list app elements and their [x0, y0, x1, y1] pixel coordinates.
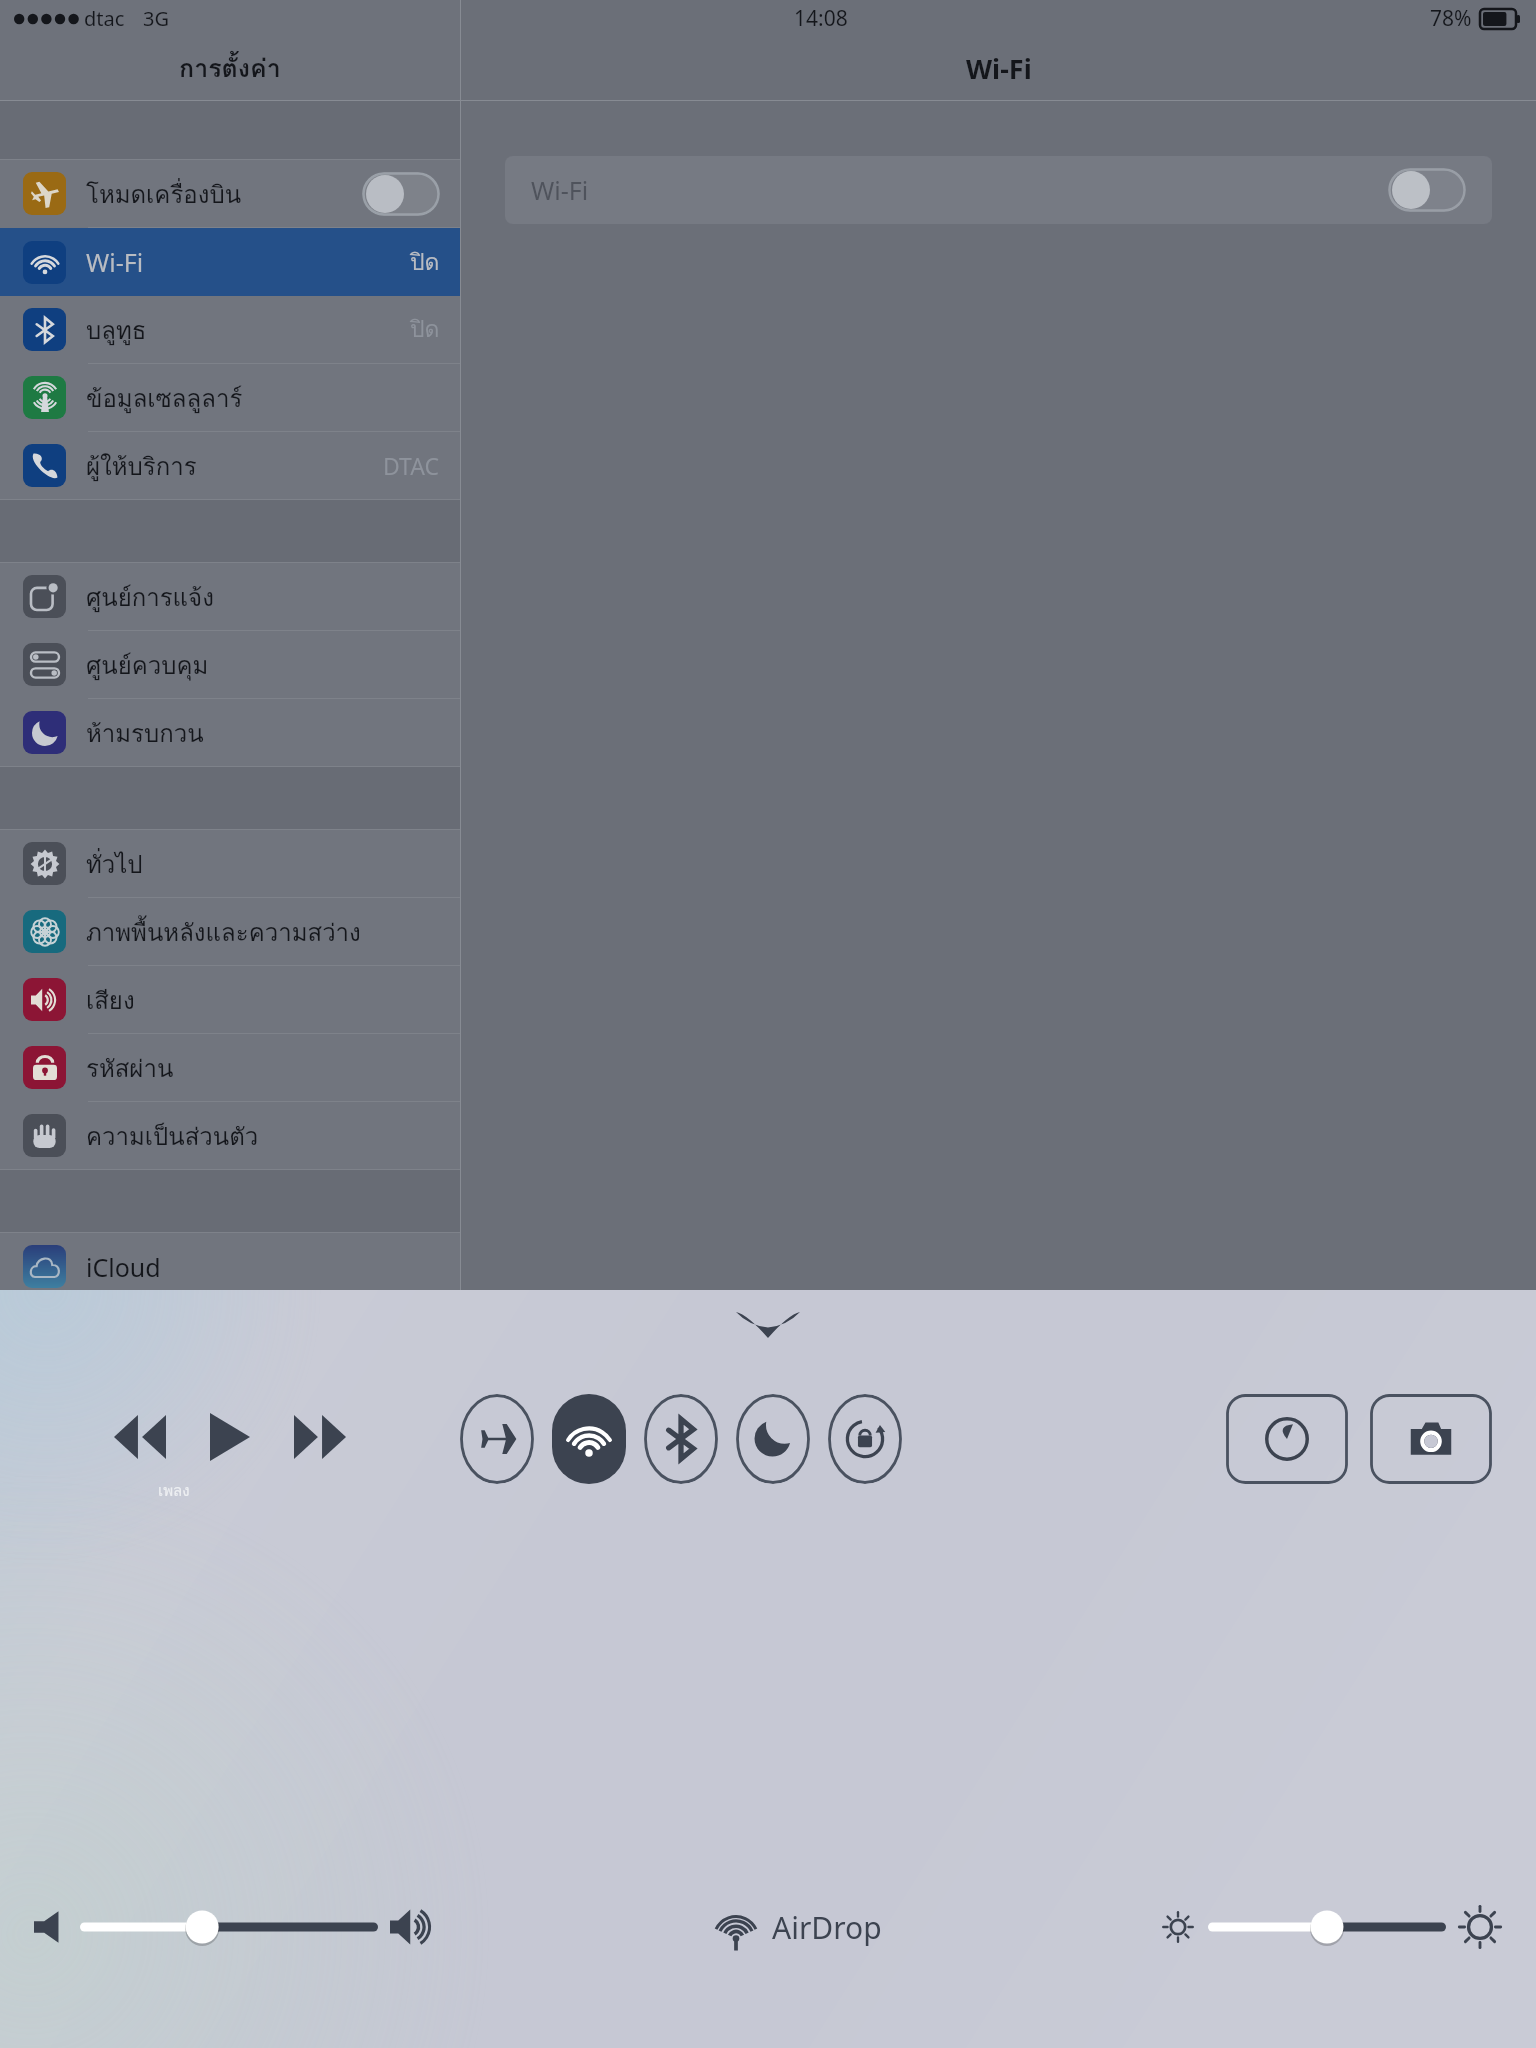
button[interactable]: Do not disturb	[736, 1394, 810, 1484]
button[interactable]: Play	[188, 1395, 272, 1479]
staticText: ทั่วไป	[86, 845, 440, 883]
staticText: รหัสผ่าน	[86, 1049, 440, 1087]
staticText: ศูนย์การแจ้ง	[86, 578, 440, 616]
staticText: เสียง	[86, 981, 440, 1019]
button[interactable]: Wi-Fi	[552, 1394, 626, 1484]
button[interactable]: Camera	[1370, 1394, 1492, 1484]
staticText: Wi-Fi	[86, 245, 410, 279]
staticText: AirDrop	[772, 1907, 882, 1948]
staticText: ศูนย์ควบคุม	[86, 646, 440, 684]
staticText: บลูทูธ	[86, 311, 410, 349]
staticText: การตั้งค่า	[179, 48, 281, 88]
button[interactable]: Airplane mode toggle	[362, 172, 440, 216]
staticText: 3G	[143, 5, 169, 32]
staticText: iCloud	[86, 1250, 440, 1284]
button[interactable]: ทั่วไป	[0, 830, 460, 898]
staticText: เพลง	[158, 1479, 190, 1503]
button[interactable]: Wi-Fi	[505, 156, 1492, 224]
staticText: Mail, รายชื่อ, ปฏิทิน	[86, 1316, 440, 1354]
button[interactable]: AirDrop	[704, 1893, 892, 1961]
staticText: 78%	[1430, 4, 1472, 33]
button[interactable]: Previous track	[98, 1395, 182, 1479]
staticText: ความเป็นส่วนตัว	[86, 1117, 440, 1155]
button[interactable]	[80, 1904, 378, 1950]
button[interactable]: เสียง	[0, 966, 460, 1034]
button[interactable]: ความเป็นส่วนตัว	[0, 1102, 460, 1169]
button[interactable]: รหัสผ่าน	[0, 1034, 460, 1102]
button[interactable]: Mail, รายชื่อ, ปฏิทิน	[0, 1301, 460, 1368]
button[interactable]: Bluetooth	[644, 1394, 718, 1484]
button[interactable]: Wi-Fi	[0, 228, 460, 296]
button[interactable]: โหมดเครื่องบิน	[0, 160, 460, 228]
staticText: dtac	[84, 5, 125, 32]
staticText: Wi-Fi	[966, 50, 1032, 87]
button[interactable]: Rotation lock	[828, 1394, 902, 1484]
button[interactable]: iCloud	[0, 1233, 460, 1301]
staticText: ห้ามรบกวน	[86, 714, 440, 752]
button[interactable]: บลูทูธ	[0, 296, 460, 364]
staticText: Wi-Fi	[531, 173, 1388, 207]
button[interactable]: ศูนย์ควบคุม	[0, 631, 460, 699]
button[interactable]: ห้ามรบกวน	[0, 699, 460, 766]
button[interactable]: ศูนย์การแจ้ง	[0, 563, 460, 631]
staticText: 14:08	[794, 4, 848, 33]
button[interactable]: ข้อมูลเซลลูลาร์	[0, 364, 460, 432]
button[interactable]: ภาพพื้นหลังและความสว่าง	[0, 898, 460, 966]
button[interactable]	[1208, 1904, 1446, 1950]
staticText: โหมดเครื่องบิน	[86, 175, 362, 213]
staticText: ปิด	[410, 311, 440, 348]
staticText: ผู้ให้บริการ	[86, 447, 383, 485]
staticText: DTAC	[383, 450, 440, 481]
staticText: ภาพพื้นหลังและความสว่าง	[86, 913, 440, 951]
button[interactable]: Airplane mode	[460, 1394, 534, 1484]
button[interactable]: ผู้ให้บริการ	[0, 432, 460, 499]
staticText: ปิด	[410, 244, 440, 281]
staticText: ข้อมูลเซลลูลาร์	[86, 379, 440, 417]
button[interactable]: Timer	[1226, 1394, 1348, 1484]
button[interactable]: Next track	[278, 1395, 362, 1479]
